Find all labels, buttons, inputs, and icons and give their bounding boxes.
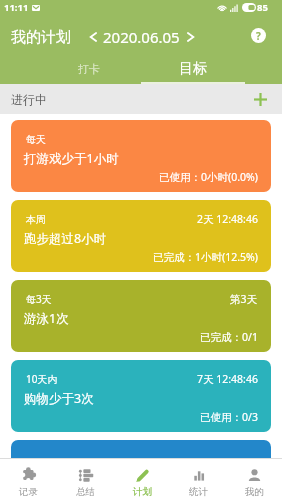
staticText: 已完成：1小时(12.5%) — [153, 250, 258, 264]
staticText: 我的计划 — [11, 28, 71, 47]
button[interactable]: 每3天 — [11, 280, 271, 352]
staticText: 第3天 — [230, 292, 258, 306]
staticText: 打卡 — [78, 62, 100, 76]
staticText: 进行中 — [11, 92, 47, 107]
staticText: ? — [256, 29, 261, 43]
button[interactable]: 每天 — [11, 120, 271, 192]
staticText: 目标 — [179, 60, 207, 78]
staticText: 10天内 — [26, 372, 58, 386]
button[interactable]: Previous day — [85, 29, 101, 45]
button[interactable]: 总结 — [57, 459, 114, 500]
button[interactable]: 我的 — [226, 459, 282, 500]
button[interactable]: 目标 — [141, 55, 245, 84]
button[interactable]: 计划 — [114, 459, 170, 500]
staticText: 游泳1次 — [24, 310, 69, 327]
button[interactable]: 本周 — [11, 200, 271, 272]
button[interactable] — [11, 440, 271, 500]
staticText: 已完成：0/1 — [200, 330, 258, 344]
button[interactable]: Next day — [182, 29, 198, 45]
button[interactable]: Add goal — [250, 89, 270, 109]
staticText: 7天 12:48:46 — [197, 372, 258, 386]
staticText: 已使用：0小时(0.0%) — [159, 170, 258, 184]
staticText: 本周 — [26, 213, 46, 226]
staticText: 11:11 — [4, 1, 29, 14]
staticText: 我的 — [245, 486, 264, 498]
button[interactable]: 打卡 — [37, 55, 141, 84]
staticText: 每天 — [26, 133, 46, 146]
staticText: 2天 12:48:46 — [197, 212, 258, 226]
button[interactable]: 记录 — [0, 459, 57, 500]
staticText: 记录 — [19, 486, 38, 498]
staticText: 打游戏少于1小时 — [24, 150, 119, 167]
button[interactable]: 10天内 — [11, 360, 271, 432]
button[interactable]: 统计 — [170, 459, 226, 500]
staticText: 总结 — [76, 486, 95, 498]
staticText: 2020.06.05 — [103, 27, 180, 47]
staticText: 已使用：0/3 — [200, 410, 258, 424]
staticText: 85 — [257, 1, 268, 14]
staticText: 每3天 — [26, 292, 52, 306]
staticText: 统计 — [189, 486, 208, 498]
staticText: 跑步超过8小时 — [24, 230, 107, 247]
staticText: 计划 — [133, 486, 152, 498]
staticText: 购物少于3次 — [24, 390, 94, 407]
button[interactable]: Help — [249, 26, 267, 44]
